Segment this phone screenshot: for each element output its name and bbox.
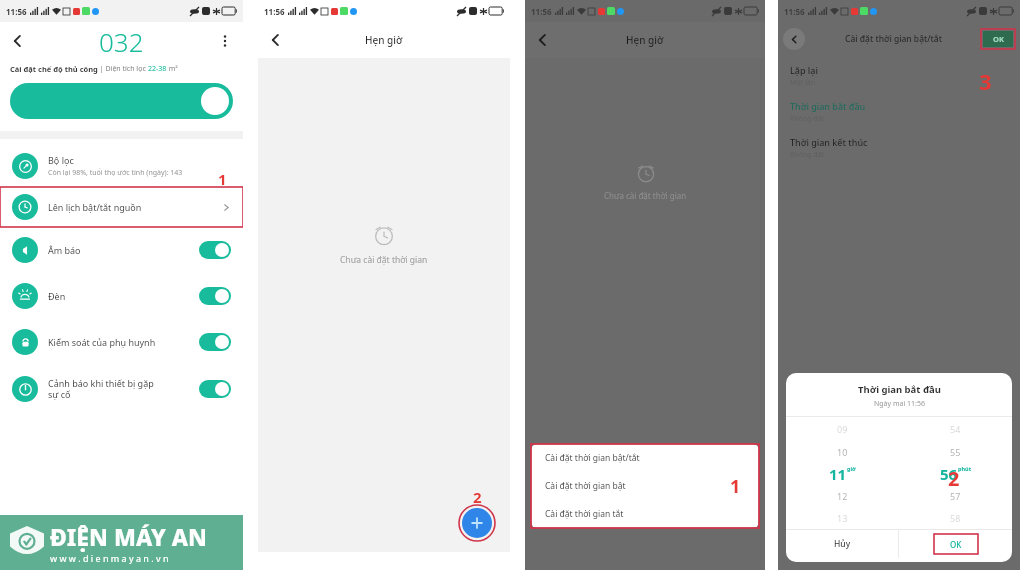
button[interactable]: Back: [529, 26, 557, 54]
staticText: 54: [950, 423, 961, 435]
staticText: Hẹn giờ: [626, 33, 664, 47]
staticText: Kiểm soát của phụ huynh: [48, 336, 199, 348]
staticText: Lên lịch bật/tắt nguồn: [48, 201, 222, 213]
staticText: Lặp lại: [790, 64, 818, 76]
staticText: 3: [979, 66, 992, 96]
staticText: 57: [950, 490, 961, 502]
staticText: 11:56: [531, 6, 552, 17]
button[interactable]: Cảnh báo khi thiết bị gặp sự cố: [0, 365, 243, 413]
button[interactable]: Kiểm soát của phụ huynh: [199, 333, 231, 351]
staticText: 11:56: [784, 6, 805, 17]
staticText: | Diện tích lọc: [98, 64, 148, 74]
button[interactable]: Cài đặt thời gian tắt: [531, 500, 759, 528]
button[interactable]: Add timer: [462, 508, 492, 538]
button[interactable]: Power toggle: [10, 83, 233, 119]
staticText: 12: [837, 490, 848, 502]
staticText: 13: [837, 512, 848, 524]
staticText: Hủy: [834, 538, 851, 550]
staticText: Cảnh báo khi thiết bị gặp sự cố: [48, 377, 199, 401]
button[interactable]: Cài đặt thời gian bật/tắt: [531, 444, 759, 472]
button[interactable]: OK: [934, 534, 978, 554]
staticText: Cài đặt thời gian tắt: [545, 508, 624, 520]
button[interactable]: Âm báo: [199, 241, 231, 259]
button[interactable]: Đèn: [0, 273, 243, 319]
staticText: 11:56: [6, 6, 27, 17]
button[interactable]: Thời gian kết thúc: [790, 136, 1008, 160]
staticText: 11: [829, 464, 847, 484]
staticText: w w w . d i e n m a y a n . v n: [50, 552, 169, 564]
staticText: Cài đặt thời gian bật/tắt: [845, 33, 942, 45]
button[interactable]: OK: [983, 31, 1013, 47]
staticText: giờ: [847, 465, 856, 472]
staticText: Cài đặt thời gian bật: [545, 480, 626, 492]
staticText: Thời gian bắt đầu: [858, 383, 941, 396]
staticText: Thời gian bắt đầu: [790, 100, 866, 112]
staticText: 11:56: [264, 6, 285, 17]
button[interactable]: Lên lịch bật/tắt nguồn: [2, 187, 241, 227]
staticText: Còn lại 98%, tuổi thọ ước tính (ngày): 1…: [48, 168, 183, 178]
staticText: OK: [993, 34, 1004, 44]
staticText: 10: [837, 446, 848, 458]
staticText: 1: [218, 169, 227, 189]
staticText: 55: [950, 446, 961, 458]
staticText: ĐIỆN MÁY AN: [50, 521, 207, 552]
staticText: Cài đặt thời gian bật/tắt: [545, 452, 640, 464]
staticText: 1: [730, 474, 741, 499]
button[interactable]: Cảnh báo khi thiết bị gặp sự cố: [199, 380, 231, 398]
staticText: OK: [950, 539, 962, 550]
button[interactable]: Lặp lại: [790, 64, 1008, 88]
staticText: Hẹn giờ: [365, 33, 403, 47]
staticText: Đèn: [48, 290, 199, 302]
staticText: 56: [940, 464, 958, 484]
button[interactable]: Hủy: [786, 530, 898, 558]
staticText: 58: [950, 512, 961, 524]
staticText: Thời gian kết thúc: [790, 136, 868, 148]
button[interactable]: Thời gian bắt đầu: [790, 100, 1008, 124]
staticText: m²: [167, 64, 178, 74]
button[interactable]: Kiểm soát của phụ huynh: [0, 319, 243, 365]
button[interactable]: Cài đặt thời gian bật: [531, 472, 759, 500]
staticText: Cài đặt chế độ thủ công: [10, 64, 98, 74]
button[interactable]: Back: [783, 28, 805, 50]
staticText: Âm báo: [48, 244, 199, 256]
staticText: Bộ lọc: [48, 154, 74, 166]
staticText: Chưa cài đặt thời gian: [340, 254, 428, 266]
button[interactable]: Bộ lọc: [0, 145, 243, 187]
button[interactable]: Back: [4, 27, 32, 55]
staticText: phút: [958, 465, 972, 472]
staticText: 032: [99, 24, 144, 59]
staticText: Ngày mai 11:56: [874, 399, 925, 409]
staticText: 2: [948, 465, 960, 492]
staticText: 2: [473, 487, 482, 507]
staticText: Chưa cài đặt thời gian: [604, 190, 687, 201]
staticText: 09: [837, 423, 848, 435]
button[interactable]: Âm báo: [0, 227, 243, 273]
button[interactable]: More options: [211, 27, 239, 55]
staticText: 22-38: [148, 64, 167, 74]
button[interactable]: Đèn: [199, 287, 231, 305]
button[interactable]: Back: [262, 26, 290, 54]
